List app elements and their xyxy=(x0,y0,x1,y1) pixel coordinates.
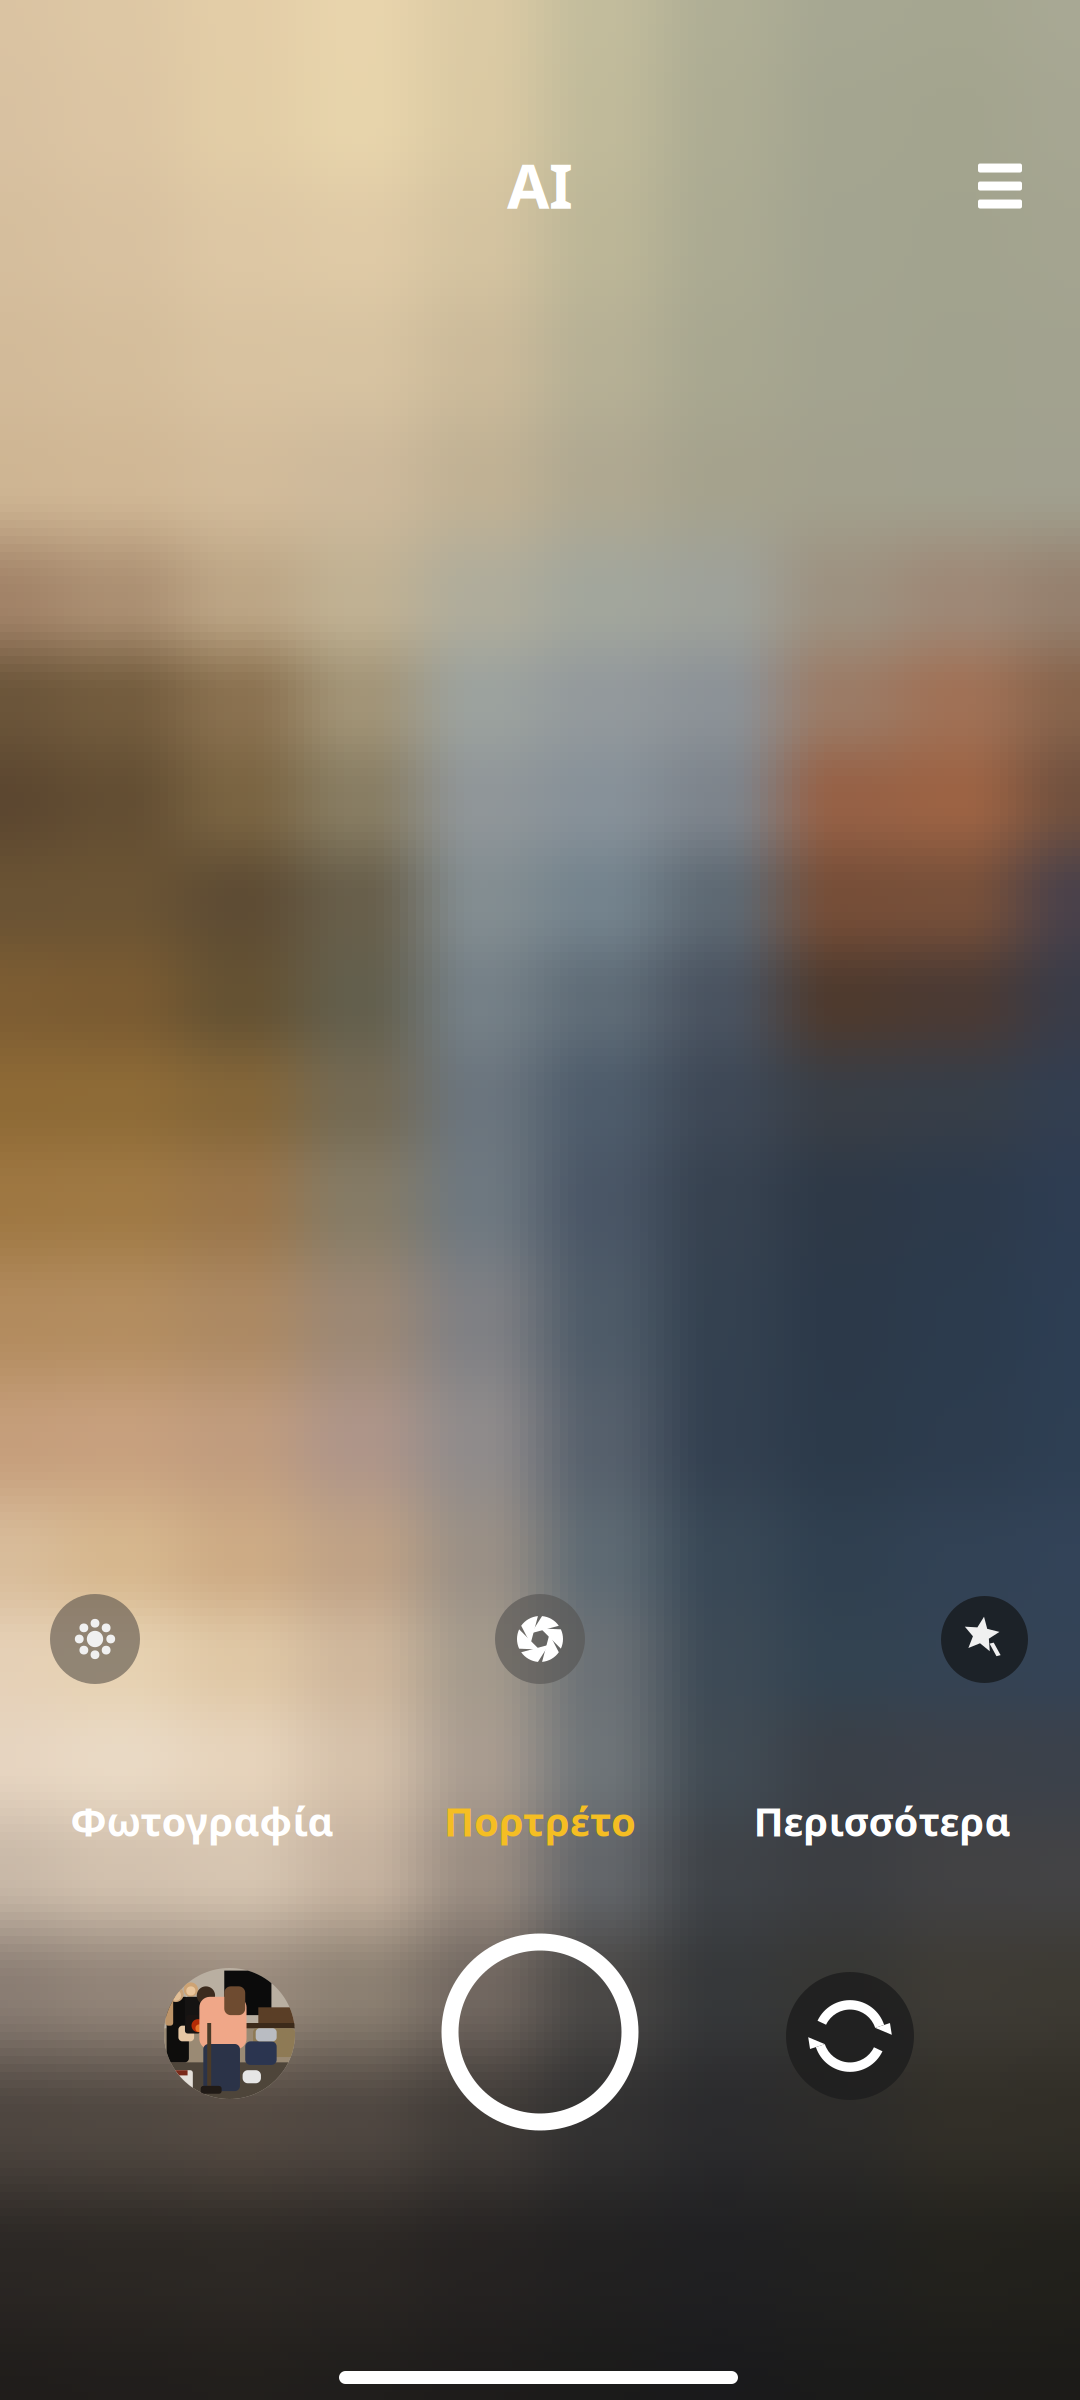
button[interactable]: Φωτογραφία xyxy=(22,1776,382,1866)
button[interactable]: Περισσότερα xyxy=(702,1776,1062,1866)
button[interactable]: Menu xyxy=(945,131,1055,241)
button[interactable]: Effects xyxy=(941,1596,1028,1683)
button[interactable]: Brightness xyxy=(50,1594,140,1684)
button[interactable]: Switch camera xyxy=(786,1972,914,2100)
button[interactable]: AI xyxy=(455,130,625,240)
button[interactable]: Photo library xyxy=(164,1968,295,2099)
staticText: AI xyxy=(507,144,573,226)
button[interactable]: Aperture xyxy=(495,1594,585,1684)
button[interactable]: Take photo xyxy=(450,1942,630,2122)
staticText: Φωτογραφία xyxy=(70,1794,333,1847)
button[interactable]: Πορτρέτο xyxy=(390,1776,690,1866)
staticText: Περισσότερα xyxy=(753,1794,1010,1847)
staticText: Πορτρέτο xyxy=(444,1794,636,1847)
